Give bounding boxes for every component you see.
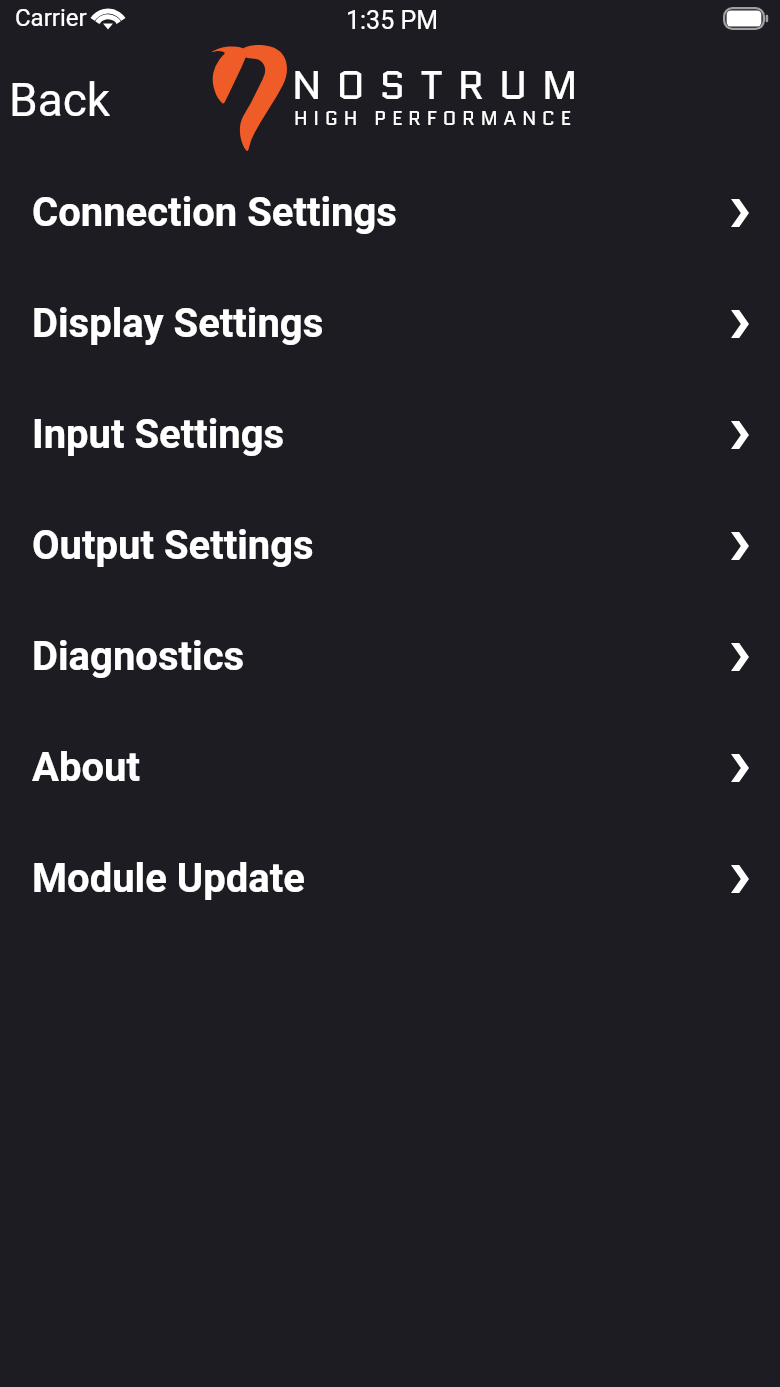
other: Open Input Settings xyxy=(731,421,749,449)
staticText: NOSTRUM xyxy=(292,56,593,113)
staticText: About xyxy=(32,744,140,791)
other: Open About xyxy=(731,754,749,782)
other: Open Diagnostics xyxy=(731,643,749,671)
staticText: 1:35 PM xyxy=(346,6,439,35)
button[interactable]: Back xyxy=(0,67,141,137)
staticText: Module Update xyxy=(32,855,305,902)
button[interactable]: Connection Settings xyxy=(0,157,780,268)
button[interactable]: About xyxy=(0,712,780,823)
staticText: Carrier xyxy=(15,4,87,32)
button[interactable]: Output Settings xyxy=(0,490,780,601)
button[interactable]: Display Settings xyxy=(0,268,780,379)
other: Open Connection Settings xyxy=(731,199,749,227)
staticText: HIGH PERFORMANCE xyxy=(294,105,577,132)
other: Open Display Settings xyxy=(731,310,749,338)
button[interactable]: Diagnostics xyxy=(0,601,780,712)
staticText: Connection Settings xyxy=(32,189,397,236)
staticText: Display Settings xyxy=(32,300,324,347)
staticText: Diagnostics xyxy=(32,633,245,680)
button[interactable]: Input Settings xyxy=(0,379,780,490)
other: Open Module Update xyxy=(731,865,749,893)
other: Open Output Settings xyxy=(731,532,749,560)
staticText: Input Settings xyxy=(32,411,285,458)
staticText: Output Settings xyxy=(32,522,314,569)
staticText: Back xyxy=(9,73,111,127)
button[interactable]: Module Update xyxy=(0,823,780,934)
